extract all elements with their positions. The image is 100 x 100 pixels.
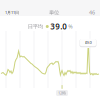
staticText: 単位 xyxy=(49,9,59,16)
staticText: % xyxy=(68,23,72,30)
staticText: 49.0 xyxy=(84,40,91,45)
staticText: 日平均 xyxy=(28,23,43,30)
button[interactable]: 単位 xyxy=(49,9,59,16)
staticText: 39.0 xyxy=(50,21,67,32)
staticText: 12時 xyxy=(58,90,66,96)
button[interactable]: 1月11日 xyxy=(5,10,19,15)
staticText: 1月11日 xyxy=(5,10,19,15)
staticText: 46 xyxy=(89,9,95,16)
